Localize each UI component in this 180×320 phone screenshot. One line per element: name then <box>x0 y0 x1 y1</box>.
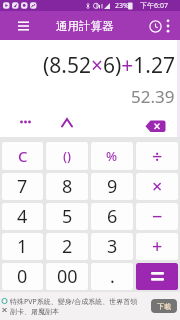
staticText: 3 <box>107 234 118 259</box>
button[interactable] <box>161 19 175 33</box>
button[interactable]: × <box>136 173 178 200</box>
button[interactable]: 7 <box>2 173 43 200</box>
staticText: () <box>63 147 72 165</box>
staticText: 副卡、屠魔副本 <box>10 307 59 316</box>
staticText: 下午6:07 <box>140 1 168 11</box>
staticText: 8 <box>62 174 73 199</box>
staticText: 9 <box>107 174 118 199</box>
staticText: (8.52×6)+1.27 <box>43 51 175 80</box>
staticText: 7 <box>17 174 28 199</box>
staticText: 5 <box>62 204 73 229</box>
button[interactable] <box>136 263 178 290</box>
staticText: 52.39 <box>131 85 175 108</box>
button[interactable]: 特殊PVP系統、變身/合成系統、世界首領 <box>0 292 180 320</box>
button[interactable]: 2 <box>46 233 88 260</box>
staticText: 通用計算器 <box>56 19 114 33</box>
staticText: − <box>152 204 163 229</box>
button[interactable]: 1 <box>2 233 43 260</box>
staticText: × <box>152 174 163 199</box>
button[interactable]: 0 <box>2 263 43 290</box>
staticText: 2 <box>62 234 73 259</box>
button[interactable]: 9 <box>91 173 133 200</box>
staticText: 23% <box>115 1 129 11</box>
staticText: 特殊PVP系統、變身/合成系統、世界首領 <box>10 297 138 307</box>
button[interactable] <box>13 15 35 37</box>
button[interactable]: 4 <box>2 203 43 230</box>
button[interactable]: . <box>91 263 133 290</box>
button[interactable]: + <box>136 233 178 260</box>
staticText: C <box>18 146 28 166</box>
button[interactable]: () <box>46 142 88 170</box>
button[interactable] <box>58 115 76 131</box>
staticText: 0 <box>17 264 28 289</box>
button[interactable] <box>147 18 163 34</box>
button[interactable]: 5 <box>46 203 88 230</box>
staticText: 4 <box>17 204 28 229</box>
staticText: 下載 <box>157 302 171 311</box>
staticText: 00 <box>57 264 78 289</box>
button[interactable]: 8 <box>46 173 88 200</box>
button[interactable]: % <box>91 142 133 170</box>
staticText: 6 <box>107 204 118 229</box>
button[interactable] <box>145 119 167 136</box>
button[interactable]: ÷ <box>136 142 178 170</box>
button[interactable]: 00 <box>46 263 88 290</box>
staticText: ÷ <box>152 144 163 169</box>
button[interactable]: 6 <box>91 203 133 230</box>
staticText: % <box>106 147 118 165</box>
staticText: . <box>110 264 115 289</box>
staticText: + <box>152 234 163 259</box>
staticText: 1 <box>17 234 28 259</box>
button[interactable]: − <box>136 203 178 230</box>
button[interactable] <box>14 115 36 129</box>
button[interactable]: 下載 <box>151 299 177 313</box>
button[interactable]: C <box>2 142 43 170</box>
button[interactable]: 3 <box>91 233 133 260</box>
